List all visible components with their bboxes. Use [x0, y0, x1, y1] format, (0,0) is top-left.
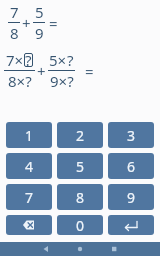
staticText: 5 [76, 157, 85, 176]
button[interactable]: 0 [57, 215, 103, 235]
staticText: 9×? [50, 71, 74, 91]
staticText: ? [67, 50, 74, 70]
button[interactable]: 9 [108, 184, 154, 210]
button[interactable]: 7 [6, 184, 52, 210]
button[interactable]: 4 [6, 153, 52, 179]
staticText: 0 [76, 216, 85, 235]
button[interactable] [29, 242, 63, 256]
staticText: 1 [25, 126, 34, 145]
staticText: 6 [127, 157, 136, 176]
staticText: + [22, 13, 31, 33]
button[interactable]: 1 [6, 122, 52, 148]
staticText: 8 [76, 188, 85, 207]
staticText: 3 [127, 126, 136, 145]
staticText: 5× [49, 50, 67, 70]
button[interactable] [6, 215, 52, 235]
staticText: 8 [10, 23, 19, 43]
button[interactable] [97, 242, 131, 256]
staticText: 9 [127, 188, 136, 207]
staticText: 9 [35, 23, 44, 43]
staticText: 2 [76, 126, 85, 145]
staticText: ? [25, 50, 32, 70]
button[interactable] [63, 242, 97, 256]
staticText: 8×? [8, 71, 32, 91]
button[interactable]: 3 [108, 122, 154, 148]
button[interactable]: 6 [108, 153, 154, 179]
staticText: = [85, 61, 94, 81]
button[interactable]: 5 [57, 153, 103, 179]
button[interactable] [108, 215, 154, 235]
staticText: = [49, 13, 58, 33]
staticText: 7× [6, 50, 24, 70]
button[interactable]: 2 [57, 122, 103, 148]
staticText: 7 [25, 188, 34, 207]
staticText: + [37, 61, 46, 81]
staticText: 5 [35, 2, 44, 22]
button[interactable]: 8 [57, 184, 103, 210]
staticText: 4 [25, 157, 34, 176]
staticText: 7 [10, 2, 19, 22]
